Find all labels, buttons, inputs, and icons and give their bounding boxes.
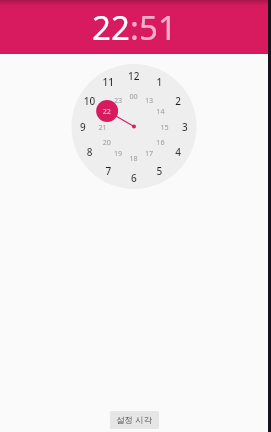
staticText: : [130, 5, 139, 50]
button[interactable]: 설정 시각 [110, 411, 159, 429]
button[interactable]: 51 [139, 5, 177, 50]
button[interactable]: Select hour [72, 64, 197, 189]
staticText: 설정 시각 [116, 414, 153, 426]
button[interactable]: 22 [92, 5, 130, 50]
